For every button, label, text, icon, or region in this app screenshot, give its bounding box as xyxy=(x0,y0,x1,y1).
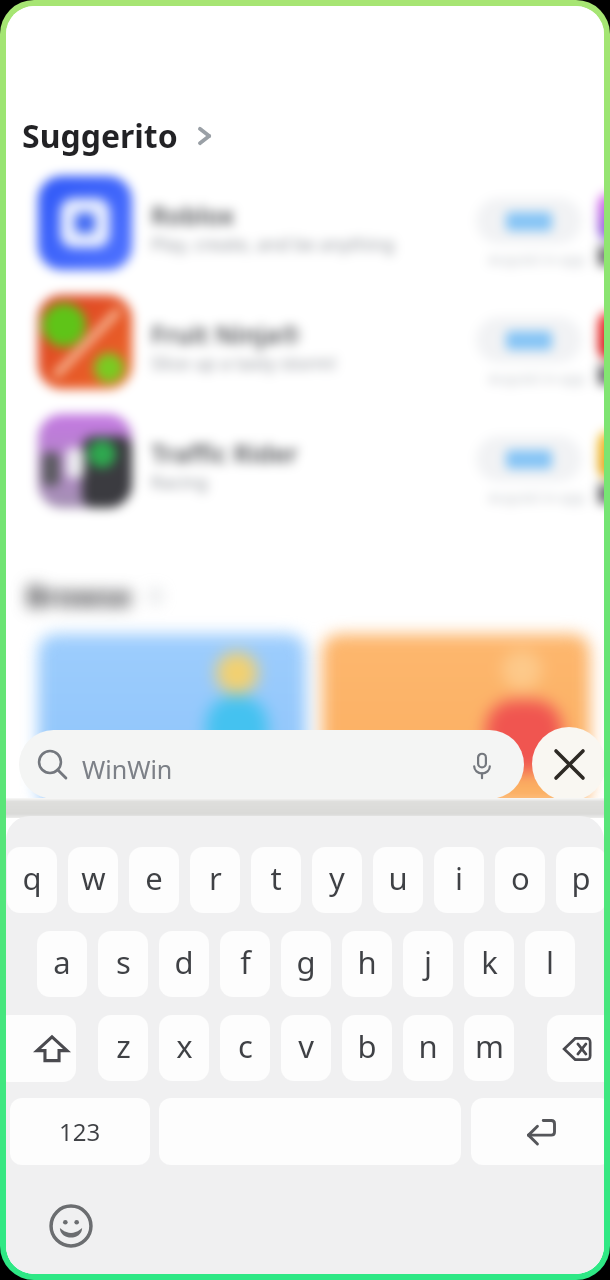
staticText: n xyxy=(418,1025,438,1067)
button[interactable]: i xyxy=(434,847,484,913)
staticText: Acquisti in-app xyxy=(488,488,586,507)
staticText: Roblox xyxy=(151,198,235,232)
staticText: u xyxy=(388,857,408,899)
staticText: 123 xyxy=(59,1115,101,1148)
button[interactable]: j xyxy=(403,931,453,997)
button[interactable]: c xyxy=(220,1015,270,1081)
staticText: y xyxy=(329,857,345,899)
staticText: p xyxy=(571,857,591,899)
staticText: Slice up a tasty storm! xyxy=(151,351,336,376)
button[interactable]: WinWin xyxy=(19,730,524,799)
staticText: r xyxy=(209,857,222,899)
staticText: Acquisti in-app xyxy=(488,250,586,269)
staticText: i xyxy=(455,857,463,899)
staticText: z xyxy=(116,1025,131,1067)
button[interactable]: e xyxy=(129,847,179,913)
button[interactable]: Backspace xyxy=(547,1015,604,1082)
button[interactable]: p xyxy=(556,847,604,913)
staticText: f xyxy=(240,941,251,983)
staticText: c xyxy=(238,1025,253,1067)
button[interactable]: d xyxy=(159,931,209,997)
button[interactable]: s xyxy=(98,931,148,997)
button[interactable]: z xyxy=(98,1015,148,1081)
button[interactable]: q xyxy=(7,847,57,913)
button[interactable]: Close search xyxy=(532,727,604,801)
button[interactable]: Shift xyxy=(6,1015,76,1082)
button[interactable]: v xyxy=(281,1015,331,1081)
button[interactable]: b xyxy=(342,1015,392,1081)
button[interactable]: m xyxy=(464,1015,514,1081)
button[interactable]: n xyxy=(403,1015,453,1081)
button[interactable]: r xyxy=(190,847,240,913)
button[interactable]: y xyxy=(312,847,362,913)
button[interactable]: u xyxy=(373,847,423,913)
staticText: Play, create, and be anything xyxy=(151,232,395,257)
button[interactable]: t xyxy=(251,847,301,913)
button[interactable]: 123 xyxy=(10,1098,150,1165)
staticText: t xyxy=(270,857,282,899)
button[interactable]: w xyxy=(68,847,118,913)
button[interactable]: x xyxy=(159,1015,209,1081)
staticText: Browse xyxy=(26,576,132,615)
button[interactable]: Voice search xyxy=(462,746,502,786)
staticText: Acquisti in-app xyxy=(488,369,586,388)
staticText: WinWin xyxy=(82,752,173,786)
staticText: v xyxy=(298,1025,314,1067)
staticText: Fruit Ninja® xyxy=(151,317,301,351)
staticText: q xyxy=(22,857,42,899)
staticText: Traffic Rider xyxy=(151,436,298,470)
staticText: a xyxy=(53,941,71,983)
staticText: x xyxy=(176,1025,193,1067)
staticText: j xyxy=(424,941,432,983)
staticText: o xyxy=(511,857,530,899)
staticText: g xyxy=(296,941,316,983)
staticText: Suggerito xyxy=(22,114,178,158)
button[interactable]: f xyxy=(220,931,270,997)
staticText: l xyxy=(546,941,554,983)
button[interactable]: a xyxy=(37,931,87,997)
button[interactable]: g xyxy=(281,931,331,997)
button[interactable]: Emoji xyxy=(47,1202,94,1249)
button[interactable]: k xyxy=(464,931,514,997)
staticText: m xyxy=(475,1025,504,1067)
staticText: s xyxy=(116,941,131,983)
button[interactable]: l xyxy=(525,931,575,997)
button[interactable]: Enter xyxy=(471,1098,604,1165)
staticText: h xyxy=(357,941,377,983)
staticText: Racing xyxy=(151,470,208,495)
staticText: k xyxy=(481,941,498,983)
button[interactable]: h xyxy=(342,931,392,997)
staticText: b xyxy=(357,1025,377,1067)
button[interactable]: o xyxy=(495,847,545,913)
staticText: w xyxy=(81,857,106,899)
staticText: d xyxy=(174,941,194,983)
staticText: e xyxy=(145,857,163,899)
button[interactable]: Suggerito xyxy=(22,114,220,158)
